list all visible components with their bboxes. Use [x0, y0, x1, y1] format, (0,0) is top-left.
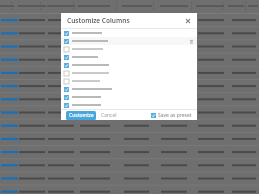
button[interactable]: [61, 85, 197, 93]
staticText: Save as preset: [158, 112, 192, 119]
button[interactable]: [61, 101, 197, 109]
button[interactable]: [61, 93, 197, 101]
button[interactable]: Close: [183, 16, 193, 26]
button[interactable]: [61, 77, 197, 85]
button[interactable]: [61, 53, 197, 61]
staticText: Customize Columns: [67, 16, 130, 25]
button[interactable]: [61, 29, 197, 37]
button[interactable]: Save as preset: [151, 112, 192, 119]
button[interactable]: Cancel: [99, 111, 119, 120]
button[interactable]: [61, 61, 197, 69]
button[interactable]: [61, 45, 197, 53]
button[interactable]: Customize: [66, 111, 96, 120]
staticText: Cancel: [101, 112, 117, 119]
staticText: Customize: [69, 112, 94, 119]
button[interactable]: [61, 69, 197, 77]
other: Reorder: [189, 39, 194, 44]
button[interactable]: Reorder: [61, 37, 197, 45]
